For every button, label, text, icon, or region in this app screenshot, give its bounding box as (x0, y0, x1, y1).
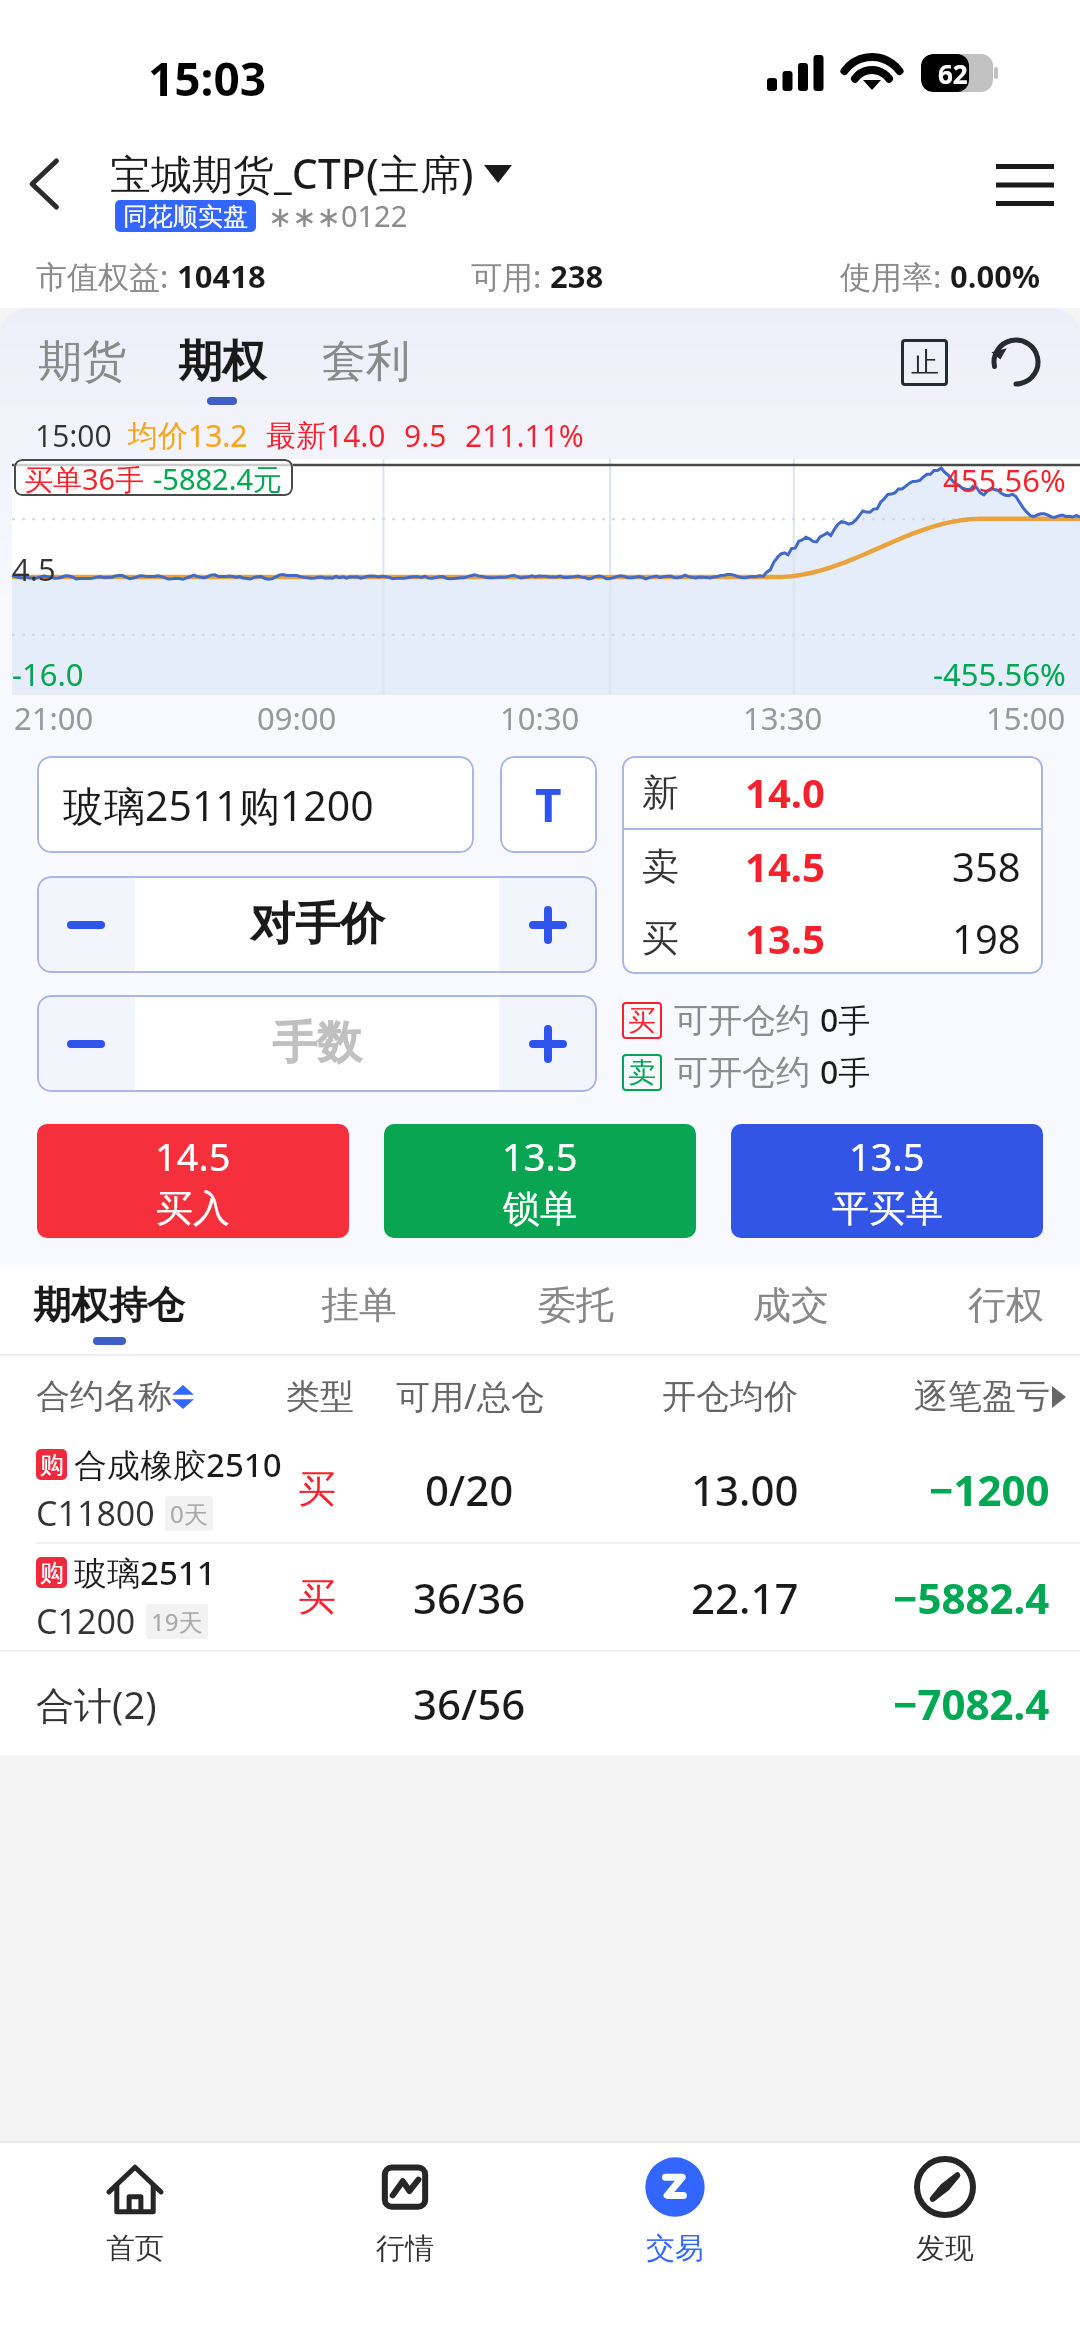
staticText: 14.5 (745, 839, 825, 893)
button[interactable]: 期货 (36, 334, 128, 405)
staticText: 卖 (628, 1055, 656, 1090)
staticText: 均价 (128, 417, 188, 455)
button[interactable]: 手数 (135, 995, 499, 1092)
staticText: 买单36手 (24, 459, 145, 496)
staticText: 合计(2) (36, 1678, 157, 1730)
staticText: 25.0 (22, 459, 82, 500)
staticText: 13.5 (502, 1130, 578, 1182)
staticText: 0手 (820, 998, 871, 1042)
staticText: 期货 (38, 334, 126, 389)
staticText: 成交 (753, 1281, 829, 1329)
button[interactable]: 委托 (466, 1281, 686, 1345)
staticText: 4.5 (12, 548, 56, 590)
staticText: 15:00 (986, 697, 1066, 739)
staticText: 最新 (266, 417, 326, 455)
staticText: 238 (550, 255, 604, 297)
button[interactable]: 期权持仓 (0, 1281, 219, 1345)
staticText: 行权 (968, 1281, 1044, 1329)
staticText: 开仓均价 (662, 1375, 798, 1418)
staticText: 14.0 (745, 765, 825, 819)
button[interactable]: 14.5 (37, 1124, 349, 1238)
button[interactable]: 交易 (540, 2143, 810, 2347)
button[interactable]: Decrease (37, 876, 135, 973)
button[interactable]: Decrease (37, 995, 135, 1092)
button[interactable]: 对手价 (135, 876, 499, 973)
staticText: 可开仓约 (674, 999, 810, 1042)
staticText: -5882.4元 (153, 459, 283, 496)
staticText: 13.00 (691, 1461, 799, 1518)
button[interactable]: Stop order (886, 324, 962, 400)
staticText: 期权持仓 (33, 1281, 185, 1329)
staticText: 10:30 (500, 697, 580, 739)
staticText: 19天 (151, 1605, 203, 1638)
staticText: 可用: (471, 255, 550, 297)
staticText: 行情 (376, 2230, 434, 2267)
staticText: 类型 (286, 1375, 354, 1418)
staticText: T (535, 773, 562, 836)
staticText: 逐笔盈亏 (914, 1375, 1050, 1418)
button[interactable]: 发现 (810, 2143, 1080, 2347)
staticText: 玻璃2511 (74, 1550, 216, 1595)
staticText: 0手 (820, 1050, 871, 1094)
staticText: 15:00 (35, 415, 112, 456)
button[interactable]: Refresh (978, 324, 1054, 400)
button[interactable]: Increase (499, 876, 597, 973)
staticText: −5882.4 (893, 1569, 1050, 1626)
staticText: 合约名称 (36, 1375, 172, 1418)
staticText: 期权 (178, 334, 266, 389)
button[interactable]: 期权 (176, 334, 268, 405)
staticText: -16.0 (12, 653, 84, 695)
staticText: 198 (952, 911, 1021, 965)
button[interactable]: 成交 (681, 1281, 901, 1345)
staticText: 手数 (272, 1015, 362, 1072)
button[interactable]: Increase (499, 995, 597, 1092)
staticText: 21:00 (14, 697, 94, 739)
button[interactable]: 行情 (270, 2143, 540, 2347)
button[interactable]: 首页 (0, 2143, 270, 2347)
staticText: 0.00% (950, 255, 1040, 297)
button[interactable]: 购 (0, 1544, 1080, 1650)
staticText: 买入 (156, 1185, 230, 1232)
button[interactable]: 挂单 (249, 1281, 469, 1345)
staticText: 锁单 (503, 1185, 577, 1232)
staticText: 可用/总仓 (396, 1373, 545, 1419)
button[interactable]: 购 (0, 1436, 1080, 1542)
staticText: 13:30 (743, 697, 823, 739)
staticText: 交易 (646, 2230, 704, 2267)
staticText: −7082.4 (893, 1675, 1050, 1732)
staticText: 买 (298, 1465, 336, 1513)
staticText: 止 (911, 345, 939, 380)
staticText: 卖 (642, 843, 679, 890)
button[interactable]: 行权 (896, 1281, 1080, 1345)
staticText: -455.56% (933, 653, 1066, 695)
staticText: 对手价 (250, 896, 385, 953)
staticText: 13.5 (745, 911, 825, 965)
staticText: 36/36 (413, 1569, 526, 1626)
staticText: 10418 (177, 255, 266, 297)
button[interactable]: 玻璃2511购1200 (37, 756, 474, 853)
staticText: 13.2 (188, 415, 248, 456)
staticText: 使用率: (840, 255, 950, 297)
button[interactable]: 套利 (320, 334, 412, 405)
staticText: 36/56 (413, 1675, 526, 1732)
staticText: −1200 (929, 1461, 1050, 1518)
staticText: 0/20 (425, 1461, 514, 1518)
button[interactable]: 13.5 (384, 1124, 696, 1238)
button[interactable]: Back (0, 139, 90, 229)
staticText: 358 (952, 839, 1021, 893)
staticText: 买 (298, 1573, 336, 1621)
staticText: 0天 (170, 1497, 208, 1530)
staticText: 首页 (106, 2230, 164, 2267)
button[interactable]: T (500, 756, 597, 853)
button[interactable]: Menu (970, 133, 1080, 237)
staticText: C11800 (36, 1490, 155, 1536)
staticText: 09:00 (257, 697, 337, 739)
staticText: 委托 (538, 1281, 614, 1329)
staticText: 挂单 (321, 1281, 397, 1329)
staticText: 玻璃2511购1200 (63, 777, 374, 833)
staticText: 买 (642, 915, 679, 962)
staticText: 可开仓约 (674, 1051, 810, 1094)
button[interactable]: 13.5 (731, 1124, 1043, 1238)
staticText: 211.11% (465, 415, 584, 456)
staticText: 购 (40, 1558, 64, 1588)
